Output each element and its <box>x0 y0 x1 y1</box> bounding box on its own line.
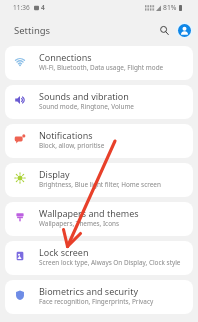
staticText: 4 <box>41 3 45 12</box>
staticText: Notifications <box>39 129 93 141</box>
staticText: Settings <box>14 24 51 37</box>
button[interactable]: Connections <box>5 46 193 80</box>
staticText: Brightness, Blue light filter, Home scre… <box>39 180 161 189</box>
staticText: Wallpapers, Themes, Icons <box>39 219 120 228</box>
button[interactable]: Lock screen <box>5 241 193 275</box>
staticText: Lock screen <box>39 246 89 258</box>
staticText: Wi-Fi, Bluetooth, Data usage, Flight mod… <box>39 63 164 72</box>
staticText: Sound mode, Ringtone, Volume <box>39 102 134 111</box>
button[interactable]: Biometrics and security <box>5 280 193 314</box>
button[interactable]: Sounds and vibration <box>5 85 193 119</box>
staticText: Connections <box>39 51 92 63</box>
staticText: Block, allow, prioritise <box>39 141 105 150</box>
staticText: Sounds and vibration <box>39 90 129 102</box>
staticText: Biometrics and security <box>39 285 139 297</box>
button[interactable]: Account <box>176 22 193 39</box>
staticText: Wallpapers and themes <box>39 207 139 219</box>
staticText: Face recognition, Fingerprints, Privacy <box>39 297 154 306</box>
staticText: Display <box>39 168 70 180</box>
staticText: 81% <box>163 3 177 12</box>
button[interactable]: Notifications <box>5 124 193 158</box>
staticText: 11:36 <box>13 3 30 12</box>
button[interactable]: Display <box>5 163 193 197</box>
button[interactable]: Search <box>155 21 173 39</box>
button[interactable]: Wallpapers and themes <box>5 202 193 236</box>
staticText: Screen lock type, Always On Display, Clo… <box>39 258 181 267</box>
